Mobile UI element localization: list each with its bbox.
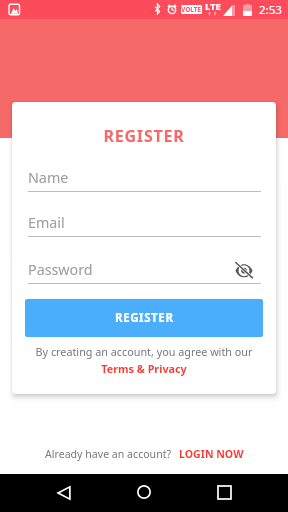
staticText: Password — [28, 260, 93, 279]
staticText: Already have an account? — [45, 447, 172, 461]
button[interactable]: Back — [50, 479, 78, 507]
button[interactable]: REGISTER — [25, 299, 263, 337]
button[interactable]: Terms & Privacy — [12, 361, 276, 376]
button[interactable]: Recents — [210, 478, 238, 506]
button[interactable]: Toggle password visibility — [232, 258, 256, 282]
button[interactable]: Home — [130, 478, 158, 506]
staticText: VOLTE — [181, 5, 202, 14]
staticText: REGISTER — [12, 125, 276, 147]
staticText: By creating an account, you agree with o… — [12, 344, 276, 359]
staticText: LOGIN NOW — [179, 447, 244, 461]
staticText: REGISTER — [115, 310, 174, 326]
staticText: LTE — [205, 0, 221, 13]
staticText: 2:53 — [259, 2, 282, 18]
staticText: Email — [28, 213, 65, 232]
button[interactable]: LOGIN NOW — [179, 447, 244, 461]
staticText: Name — [28, 168, 69, 187]
